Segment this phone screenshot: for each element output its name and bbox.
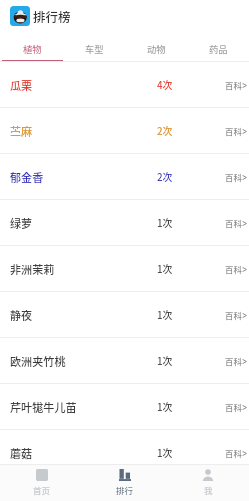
staticText: 1次 (157, 446, 173, 460)
button[interactable]: 排行 (83, 464, 166, 501)
staticText: 百科 (225, 309, 242, 321)
staticText: 1次 (157, 216, 173, 230)
button[interactable]: 植物 (2, 32, 63, 62)
staticText: 4次 (157, 78, 173, 92)
button[interactable]: 药品 (187, 32, 249, 62)
staticText: 2次 (157, 124, 173, 138)
staticText: 欧洲夹竹桃 (10, 353, 66, 369)
staticText: 1次 (157, 262, 173, 276)
button[interactable]: 车型 (63, 32, 125, 62)
staticText: 首页 (33, 484, 51, 496)
staticText: 百科 (225, 401, 242, 413)
button[interactable]: 蘑菇 (0, 430, 249, 476)
staticText: 百科 (225, 79, 242, 91)
staticText: 排行 (116, 484, 134, 496)
staticText: 芹叶牻牛儿苗 (10, 399, 77, 415)
button[interactable]: 非洲茉莉 (0, 246, 249, 292)
button[interactable]: 静夜 (0, 292, 249, 338)
button[interactable]: 绿萝 (0, 200, 249, 246)
button[interactable]: 百科 (225, 62, 249, 108)
button[interactable]: 苎麻 (0, 108, 249, 154)
staticText: 百科 (225, 447, 242, 459)
staticText: 1次 (157, 400, 173, 414)
button[interactable]: 百科 (225, 108, 249, 154)
staticText: 动物 (147, 42, 166, 55)
staticText: 绿萝 (10, 215, 33, 231)
button[interactable]: 百科 (225, 200, 249, 246)
button[interactable]: 动物 (125, 32, 187, 62)
staticText: 瓜栗 (10, 77, 33, 93)
staticText: 百科 (225, 263, 242, 275)
staticText: 排行榜 (33, 7, 71, 25)
staticText: 蘑菇 (10, 445, 33, 461)
staticText: 非洲茉莉 (10, 261, 55, 277)
button[interactable]: 百科 (225, 430, 249, 476)
button[interactable]: 我 (166, 464, 249, 501)
staticText: 我 (204, 484, 213, 496)
other: 应用图标 (10, 6, 30, 26)
button[interactable]: 首页 (0, 464, 83, 501)
button[interactable]: 瓜栗 (0, 62, 249, 108)
staticText: 1次 (157, 354, 173, 368)
button[interactable]: 欧洲夹竹桃 (0, 338, 249, 384)
staticText: 百科 (225, 171, 242, 183)
staticText: 百科 (225, 125, 242, 137)
button[interactable]: 郁金香 (0, 154, 249, 200)
staticText: 1次 (157, 308, 173, 322)
button[interactable]: 百科 (225, 246, 249, 292)
staticText: 苎麻 (10, 123, 33, 139)
staticText: 百科 (225, 217, 242, 229)
staticText: 静夜 (10, 307, 33, 323)
button[interactable]: 百科 (225, 292, 249, 338)
button[interactable]: 芹叶牻牛儿苗 (0, 384, 249, 430)
staticText: 药品 (209, 42, 228, 55)
button[interactable]: 百科 (225, 384, 249, 430)
staticText: 郁金香 (10, 169, 44, 185)
button[interactable]: 百科 (225, 154, 249, 200)
staticText: 植物 (23, 42, 42, 55)
button[interactable]: 百科 (225, 338, 249, 384)
staticText: 2次 (157, 170, 173, 184)
staticText: 车型 (85, 42, 104, 55)
staticText: 百科 (225, 355, 242, 367)
